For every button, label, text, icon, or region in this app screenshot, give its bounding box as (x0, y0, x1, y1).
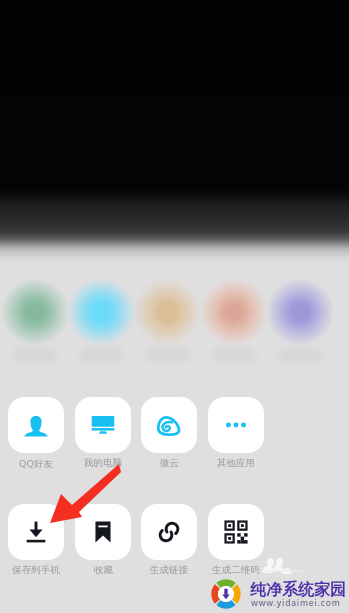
staticText: 保存到手机 (12, 564, 60, 576)
button[interactable]: 生成链接 (141, 504, 197, 576)
staticText: www.yidaimei.com (251, 597, 341, 609)
staticText: 生成链接 (150, 564, 188, 576)
button[interactable]: 微云 (141, 397, 197, 469)
button[interactable]: 收藏 (75, 504, 131, 576)
button[interactable]: 我的电脑 (75, 397, 131, 469)
staticText: 生成二维码 (212, 564, 260, 576)
button[interactable]: QQ好友 (8, 397, 64, 470)
button[interactable]: 其他应用 (208, 397, 264, 469)
staticText: 其他应用 (217, 457, 255, 469)
button[interactable]: 保存到手机 (8, 504, 64, 576)
staticText: 我的电脑 (84, 457, 122, 469)
staticText: QQ好友 (19, 457, 53, 470)
button[interactable]: 生成二维码 (208, 504, 264, 576)
staticText: 微云 (160, 457, 179, 469)
other: 纯净系统家园 logo (211, 579, 241, 609)
staticText: 纯净系统家园 (250, 580, 346, 600)
staticText: 收藏 (94, 564, 113, 576)
